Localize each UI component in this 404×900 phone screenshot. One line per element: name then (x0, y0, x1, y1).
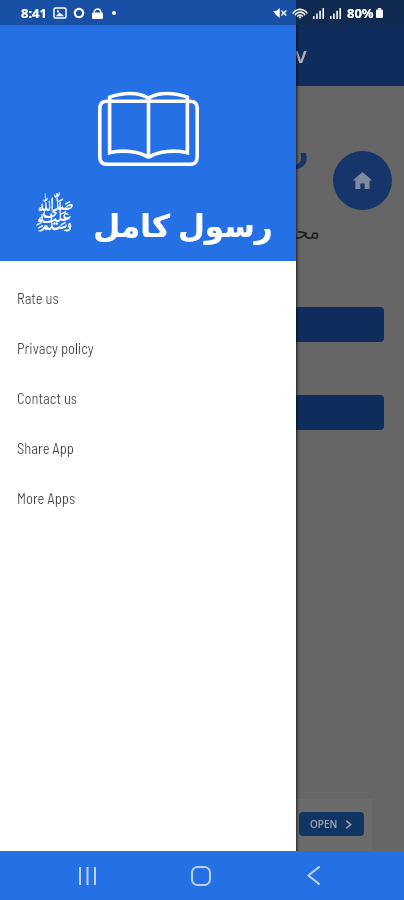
staticText: Rate us (17, 289, 59, 306)
staticText: OPEN (310, 817, 338, 831)
staticText: Share App (17, 439, 74, 456)
button[interactable]: Back (267, 851, 359, 900)
staticText: More Apps (17, 489, 76, 506)
staticText: v (295, 39, 307, 69)
staticText: ﷺ (34, 196, 76, 245)
staticText: 8:41 (21, 4, 47, 22)
button[interactable]: Home (333, 151, 392, 210)
button[interactable]: Contact us (0, 373, 296, 423)
staticText: Privacy policy (17, 339, 94, 356)
button[interactable]: Listen (20, 307, 384, 342)
button[interactable]: Share App (0, 423, 296, 473)
button[interactable]: Privacy policy (0, 323, 296, 373)
button[interactable]: Share (20, 395, 384, 430)
staticText: 80% (347, 4, 374, 22)
button[interactable]: Recent apps (42, 851, 133, 900)
staticText: محمد رسول الله (183, 218, 320, 245)
button[interactable]: More Apps (0, 473, 296, 523)
button[interactable]: Home (155, 851, 247, 900)
staticText: Contact us (17, 389, 78, 406)
staticText: رسول كامل صلى الله عليه وسلم (0, 127, 309, 172)
button[interactable]: OPEN (299, 812, 364, 836)
staticText: رسول كامل (93, 204, 273, 246)
button[interactable]: Rate us (0, 273, 296, 323)
